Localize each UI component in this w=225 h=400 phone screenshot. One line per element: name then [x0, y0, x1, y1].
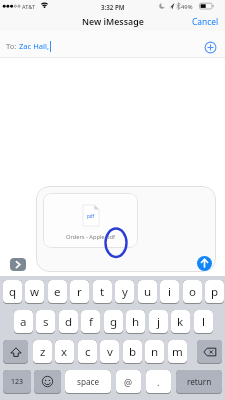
staticText: 3:32 PM [101, 3, 125, 11]
button[interactable]: o [183, 280, 202, 304]
staticText: t [100, 284, 105, 300]
button[interactable]: z [33, 340, 52, 364]
staticText: v [107, 344, 113, 360]
button[interactable]: i [160, 280, 179, 304]
button[interactable]: u [138, 280, 157, 304]
staticText: k [177, 314, 184, 330]
button[interactable]: @ [116, 370, 141, 394]
button[interactable]: k [171, 310, 190, 334]
button[interactable]: r [70, 280, 89, 304]
staticText: h [132, 314, 140, 330]
staticText: 49% [181, 3, 193, 11]
button[interactable]: g [104, 310, 123, 334]
staticText: d [65, 314, 73, 330]
staticText: y [122, 284, 128, 300]
button[interactable]: To: [6, 40, 126, 52]
staticText: x [61, 344, 68, 360]
button[interactable]: 123 [3, 370, 31, 394]
staticText: q [9, 284, 17, 300]
button[interactable]: l [194, 310, 213, 334]
staticText: p [211, 284, 219, 300]
button[interactable]: x [55, 340, 74, 364]
button[interactable]: t [93, 280, 112, 304]
staticText: s [43, 314, 49, 330]
button[interactable]: w [25, 280, 44, 304]
button[interactable]: f [81, 310, 100, 334]
staticText: e [54, 284, 61, 300]
button[interactable]: e [48, 280, 67, 304]
staticText: w [30, 284, 40, 300]
button[interactable]: Cancel [188, 14, 219, 29]
staticText: g [110, 314, 118, 330]
button[interactable] [197, 256, 212, 271]
staticText: New iMessage [82, 16, 144, 28]
staticText: i [168, 284, 171, 300]
staticText: return [187, 376, 212, 387]
staticText: a [20, 314, 27, 330]
staticText: . [157, 376, 160, 388]
button[interactable] [3, 340, 28, 364]
button[interactable] [10, 258, 26, 271]
button[interactable]: y [115, 280, 134, 304]
staticText: m [172, 344, 183, 360]
staticText: To: [6, 41, 19, 51]
button[interactable]: space [65, 370, 111, 394]
staticText: r [77, 284, 82, 300]
button[interactable]: a [14, 310, 33, 334]
staticText: @ [124, 376, 133, 388]
button[interactable]: . [146, 370, 171, 394]
staticText: AT&T [22, 3, 36, 11]
staticText: l [202, 314, 205, 330]
staticText: Zac Hall, [19, 41, 50, 51]
button[interactable] [34, 370, 61, 394]
staticText: Orders - Apple.pdf [66, 233, 116, 241]
button[interactable]: q [3, 280, 22, 304]
staticText: c [85, 344, 91, 360]
button[interactable]: d [59, 310, 78, 334]
staticText: Cancel [192, 16, 219, 27]
button[interactable] [197, 340, 222, 364]
button[interactable]: b [123, 340, 142, 364]
staticText: o [189, 284, 196, 300]
button[interactable]: n [145, 340, 164, 364]
button[interactable]: h [126, 310, 145, 334]
button[interactable] [43, 193, 138, 248]
staticText: n [151, 344, 159, 360]
staticText: j [157, 314, 160, 330]
staticText: u [144, 284, 152, 300]
button[interactable]: return [176, 370, 222, 394]
button[interactable]: c [78, 340, 97, 364]
staticText: f [89, 314, 93, 330]
button[interactable]: p [205, 280, 224, 304]
staticText: 123 [11, 377, 24, 387]
staticText: space [77, 376, 100, 387]
button[interactable]: m [168, 340, 187, 364]
button[interactable]: j [149, 310, 168, 334]
button[interactable]: s [36, 310, 55, 334]
staticText: z [40, 344, 46, 360]
staticText: b [129, 344, 137, 360]
staticText: pdf [87, 213, 95, 219]
button[interactable] [204, 41, 217, 54]
button[interactable]: v [100, 340, 119, 364]
